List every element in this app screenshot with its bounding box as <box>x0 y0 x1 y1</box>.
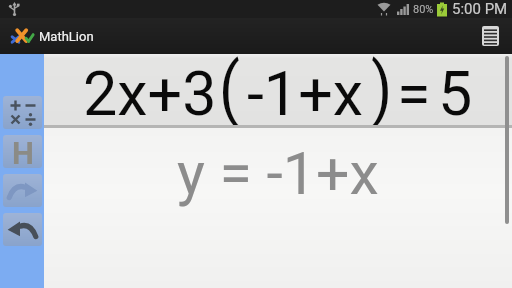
staticText: ( <box>219 48 240 129</box>
button[interactable] <box>3 174 42 207</box>
button[interactable] <box>3 213 42 246</box>
staticText: 5 <box>438 58 473 129</box>
staticText: = <box>397 58 431 129</box>
staticText: H <box>12 135 34 168</box>
staticText: MathLion <box>39 29 94 44</box>
staticText: 5:00 PM <box>452 0 508 18</box>
staticText: -1+x <box>247 58 364 129</box>
staticText: 80% <box>413 3 434 16</box>
staticText: ) <box>371 48 393 129</box>
staticText: 2x+3 <box>83 58 217 129</box>
button[interactable] <box>3 96 42 129</box>
button[interactable] <box>473 19 507 53</box>
button[interactable]: 2x+3 <box>44 54 512 128</box>
staticText: y = -1+x <box>177 139 379 208</box>
button[interactable]: H <box>3 135 42 168</box>
